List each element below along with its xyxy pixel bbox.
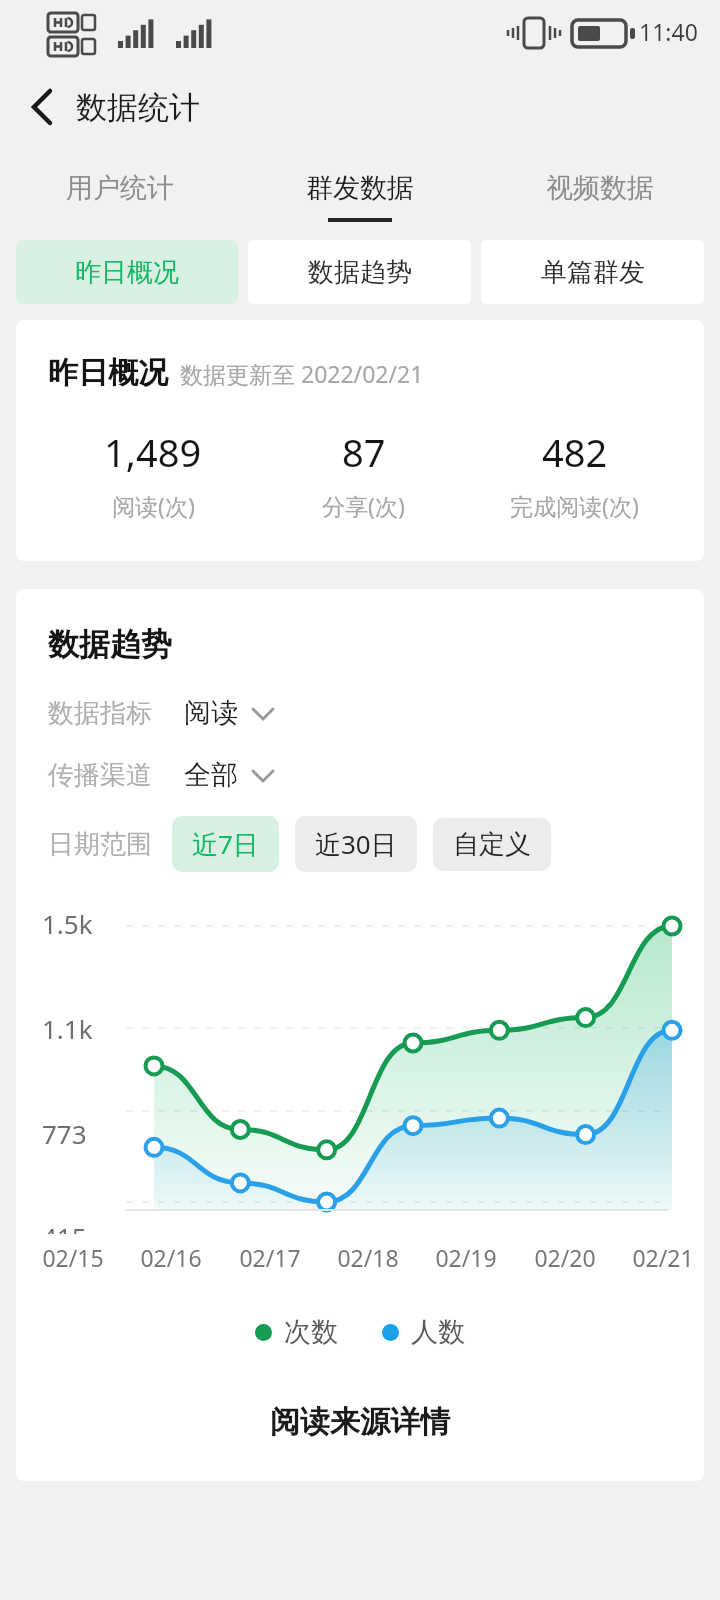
staticText: 分享(次)	[322, 490, 405, 521]
staticText: 数据统计	[76, 88, 200, 127]
staticText: 近30日	[315, 826, 397, 862]
button[interactable]: 近30日	[295, 816, 417, 872]
staticText: 02/20	[534, 1242, 596, 1273]
button[interactable]: 视频数据	[480, 152, 720, 240]
staticText: 数据指标	[48, 697, 152, 730]
staticText: 单篇群发	[541, 256, 645, 289]
button[interactable]: Back	[14, 79, 70, 135]
staticText: 用户统计	[66, 171, 174, 205]
button[interactable]: 昨日概况	[16, 240, 238, 304]
button[interactable]: 昨日概况	[16, 320, 704, 561]
staticText: 1.5k	[42, 906, 93, 941]
staticText: 11:40	[639, 16, 698, 47]
button[interactable]: 单篇群发	[481, 240, 704, 304]
staticText: 阅读(次)	[112, 490, 195, 521]
staticText: 视频数据	[546, 171, 654, 205]
button[interactable]: 传播渠道	[48, 758, 704, 792]
button[interactable]: 数据指标	[48, 696, 704, 730]
button[interactable]: 自定义	[433, 818, 551, 871]
staticText: 日期范围	[48, 828, 152, 861]
staticText: 87	[342, 426, 386, 478]
staticText: 482	[542, 426, 608, 478]
button[interactable]: 群发数据	[240, 152, 480, 240]
staticText: 自定义	[453, 828, 531, 861]
staticText: 02/21	[632, 1242, 694, 1273]
staticText: 阅读	[184, 696, 238, 730]
staticText: 昨日概况	[75, 256, 179, 289]
button[interactable]: 近7日	[172, 816, 279, 872]
staticText: 传播渠道	[48, 759, 152, 792]
staticText: 02/15	[42, 1242, 104, 1273]
staticText: 02/16	[140, 1242, 202, 1273]
staticText: 人数	[411, 1315, 465, 1349]
staticText: 阅读来源详情	[270, 1403, 450, 1441]
staticText: 次数	[284, 1315, 338, 1349]
staticText: 1.1k	[42, 1011, 93, 1046]
staticText: 完成阅读(次)	[510, 490, 639, 521]
staticText: 02/18	[337, 1242, 399, 1273]
button[interactable]: 用户统计	[0, 152, 240, 240]
staticText: 415	[42, 1219, 87, 1234]
staticText: 全部	[184, 758, 238, 792]
staticText: 数据趋势	[308, 256, 412, 289]
staticText: 近7日	[192, 826, 259, 862]
staticText: 02/19	[435, 1242, 497, 1273]
staticText: 群发数据	[306, 171, 414, 205]
staticText: 773	[42, 1116, 87, 1151]
staticText: 数据更新至 2022/02/21	[180, 358, 424, 389]
staticText: 数据趋势	[48, 625, 172, 664]
button[interactable]: 数据趋势	[248, 240, 471, 304]
staticText: 02/17	[239, 1242, 301, 1273]
staticText: 昨日概况	[48, 354, 168, 392]
staticText: 1,489	[104, 426, 202, 478]
